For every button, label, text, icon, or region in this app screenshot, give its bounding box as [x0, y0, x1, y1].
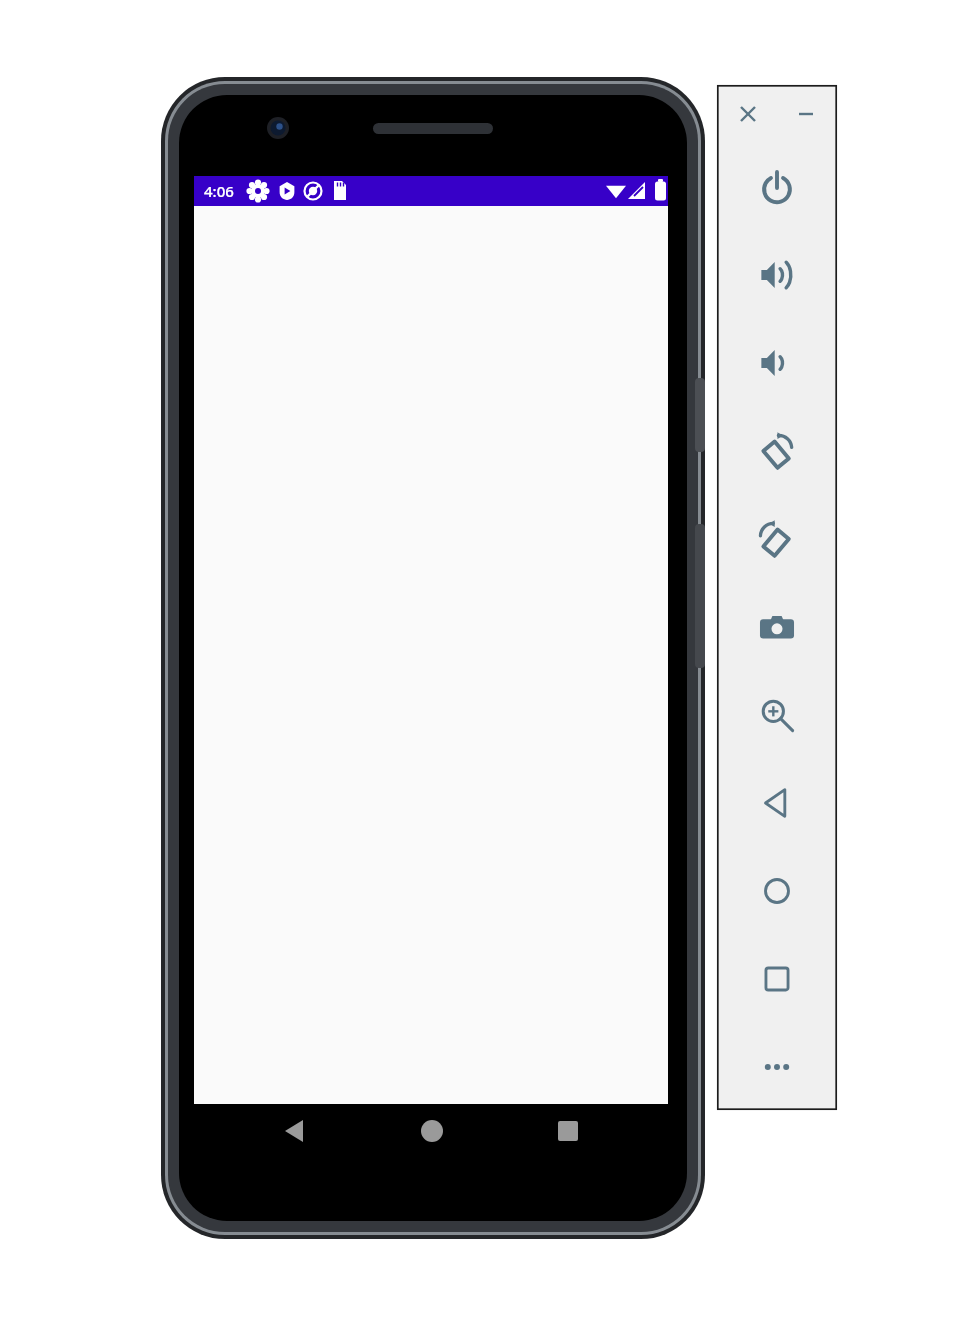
button[interactable]: Close	[728, 94, 768, 134]
button[interactable]: Home	[404, 1106, 458, 1156]
button[interactable]: Volume up	[717, 231, 837, 319]
button[interactable]: Rotate left	[717, 407, 837, 495]
button[interactable]: Back	[266, 1106, 320, 1156]
button[interactable]: Home	[717, 847, 837, 935]
button[interactable]: Minimize	[786, 94, 826, 134]
button[interactable]: Zoom	[717, 671, 837, 759]
button[interactable]: Overview	[717, 935, 837, 1023]
staticText: 4:06	[204, 181, 234, 201]
button[interactable]: Take screenshot	[717, 583, 837, 671]
button[interactable]: Volume down	[717, 319, 837, 407]
button[interactable]: More	[717, 1023, 837, 1110]
button[interactable]: Power	[717, 143, 837, 231]
button[interactable]: Back	[717, 759, 837, 847]
button[interactable]: Recent apps	[541, 1106, 595, 1156]
button[interactable]: Rotate right	[717, 495, 837, 583]
